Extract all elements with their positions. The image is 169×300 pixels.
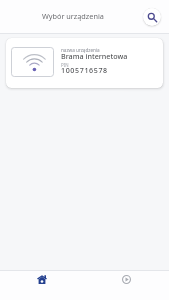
button[interactable]: Sterowanie [84,271,169,300]
staticText: PIN [61,62,69,68]
staticText: Brama internetowa [61,51,128,61]
button[interactable]: nazwa urządzenia [6,38,163,88]
button[interactable]: Szukaj [143,8,161,26]
staticText: 1005716578 [61,65,108,75]
staticText: nazwa urządzenia [61,47,100,53]
staticText: Wybór urządzenia [42,11,104,21]
button[interactable]: Strona główna [0,271,84,300]
